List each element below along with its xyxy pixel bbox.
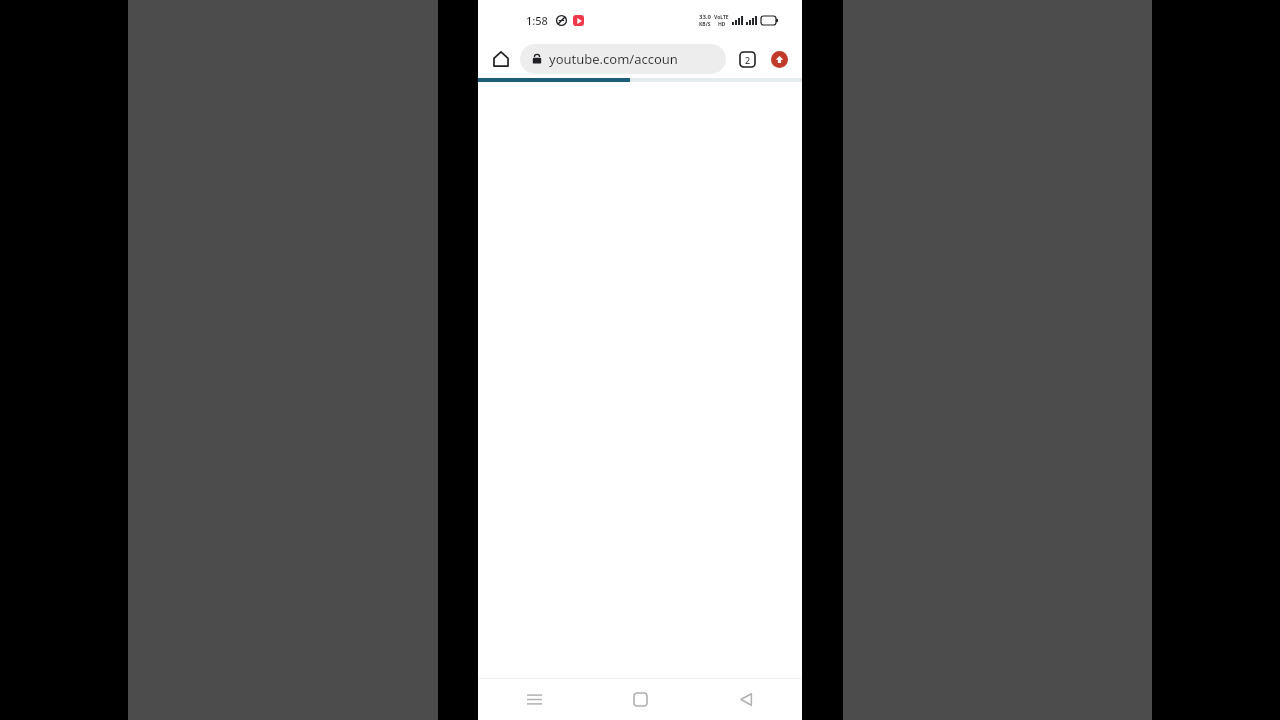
- button[interactable]: Recent apps: [512, 679, 556, 720]
- button[interactable]: Back: [724, 679, 768, 720]
- staticText: youtube.com/accoun: [549, 50, 678, 68]
- staticText: 2: [745, 54, 751, 66]
- staticText: 1:58: [526, 13, 548, 28]
- button[interactable]: Tabs: 2 open: [732, 44, 762, 74]
- button[interactable]: youtube.com/accoun: [520, 44, 726, 74]
- staticText: HD: [718, 21, 726, 28]
- button[interactable]: Home: [618, 679, 662, 720]
- staticText: VoLTE: [714, 14, 729, 21]
- staticText: 33.0: [699, 13, 711, 21]
- staticText: KB/S: [699, 21, 711, 28]
- button[interactable]: Update available: [764, 44, 794, 74]
- button[interactable]: Home: [486, 44, 516, 74]
